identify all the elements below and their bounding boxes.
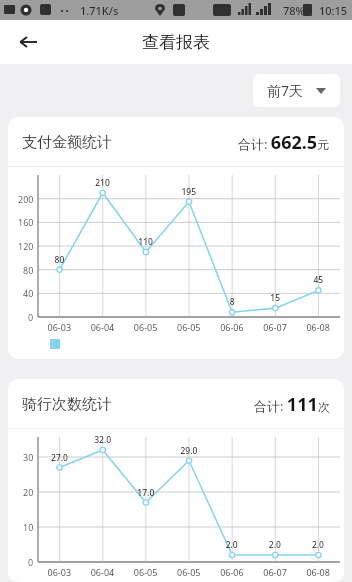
button[interactable]: Back — [10, 24, 46, 60]
staticText: 78% — [283, 3, 305, 18]
staticText: 合计: 662.5元 — [238, 130, 330, 155]
staticText: 支付金额统计 — [22, 133, 112, 152]
staticText: 1.71K/s — [80, 3, 119, 18]
button[interactable]: 支付金额统计 — [8, 117, 344, 359]
staticText: 查看报表 — [142, 32, 210, 53]
button[interactable]: 前7天 — [253, 74, 340, 107]
staticText: 前7天 — [267, 81, 304, 100]
staticText: 合计: 111次 — [254, 392, 330, 417]
staticText: 10:15 — [319, 3, 348, 18]
button[interactable]: 骑行次数统计 — [8, 379, 344, 582]
staticText: 骑行次数统计 — [22, 395, 112, 414]
